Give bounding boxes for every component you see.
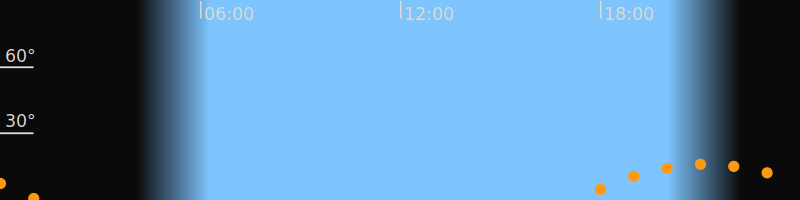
staticText: 60° — [5, 46, 36, 66]
staticText: 12:00 — [404, 4, 454, 24]
staticText: 18:00 — [604, 4, 654, 24]
staticText: 30° — [5, 111, 36, 131]
staticText: 06:00 — [204, 4, 254, 24]
